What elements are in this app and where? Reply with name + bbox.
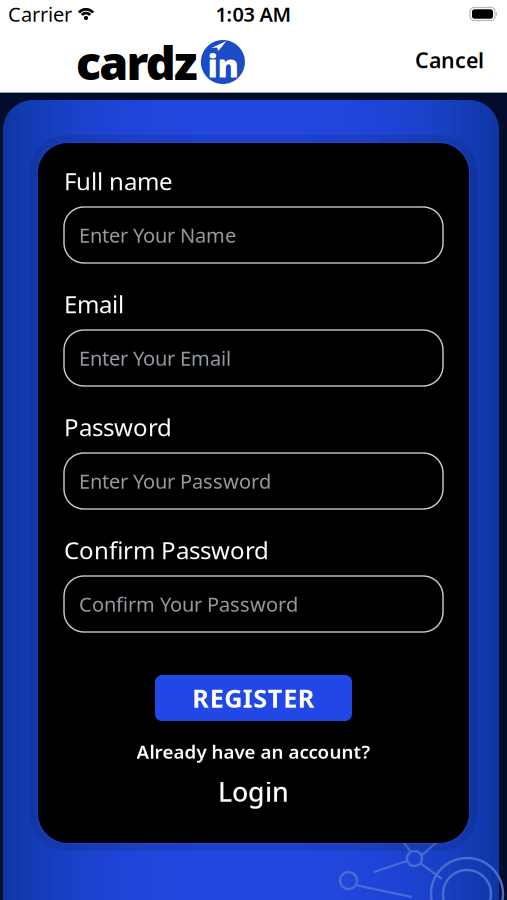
button[interactable]: Enter Your Name [64,207,443,263]
staticText: Confirm Your Password [79,591,298,617]
staticText: Password [64,411,172,443]
staticText: Email [64,288,124,320]
staticText: Confirm Password [64,534,269,566]
staticText: Already have an account? [136,739,370,764]
button[interactable]: Enter Your Password [64,453,443,509]
staticText: Cancel [415,46,484,74]
staticText: in [207,44,238,86]
button[interactable]: REGISTER [155,675,352,721]
staticText: Enter Your Email [79,345,231,371]
staticText: Enter Your Password [79,468,271,494]
button[interactable]: Login [218,778,289,805]
button[interactable]: Confirm Your Password [64,576,443,632]
button[interactable]: Cancel [415,46,484,74]
button[interactable]: Enter Your Email [64,330,443,386]
staticText: Login [218,774,289,809]
staticText: REGISTER [192,681,315,715]
staticText: cardz [76,31,198,93]
staticText: Full name [64,165,173,197]
staticText: Carrier [8,1,72,27]
staticText: 1:03 AM [215,1,291,27]
staticText: Enter Your Name [79,222,236,248]
